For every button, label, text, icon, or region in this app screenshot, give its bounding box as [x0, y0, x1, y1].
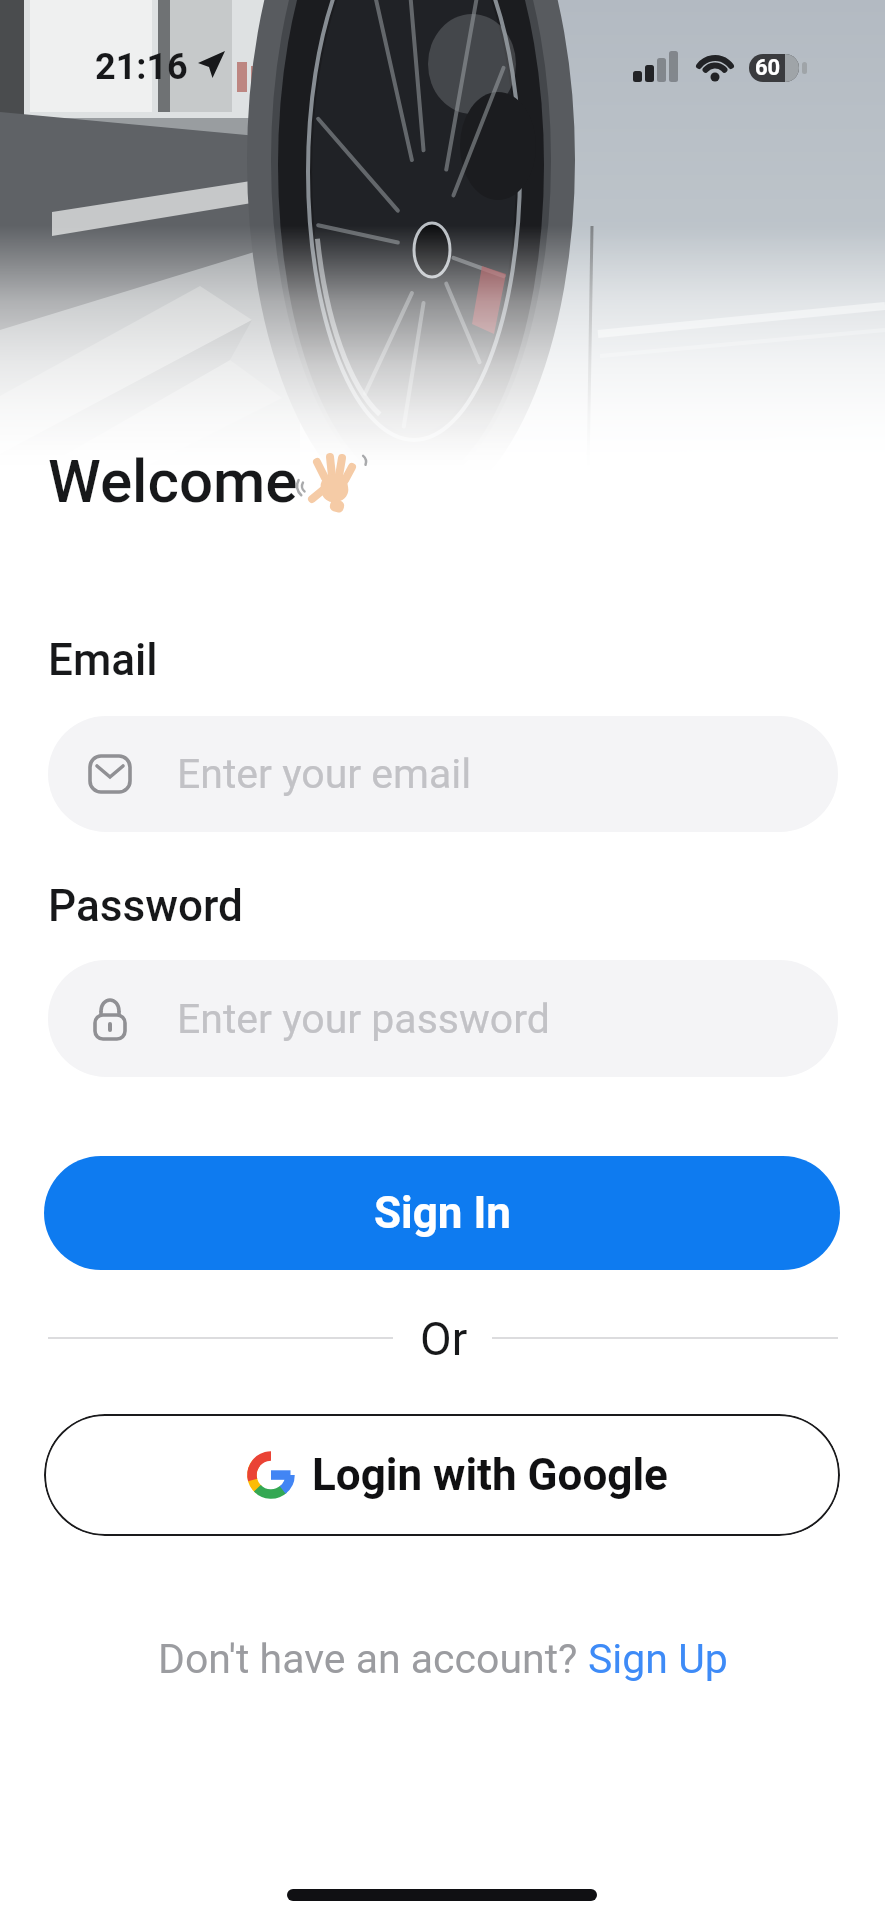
staticText: Login with Google: [312, 1449, 668, 1501]
staticText: Sign In: [374, 1187, 511, 1239]
button[interactable]: Sign Up: [588, 1635, 728, 1683]
button[interactable]: Enter your password: [48, 960, 838, 1077]
staticText: Password: [48, 880, 243, 932]
staticText: Enter your email: [177, 750, 472, 798]
button[interactable]: Sign In: [44, 1156, 840, 1270]
button[interactable]: Enter your email: [48, 716, 838, 832]
button[interactable]: Login with Google: [44, 1414, 840, 1536]
staticText: Email: [48, 634, 158, 686]
staticText: Welcome: [48, 446, 298, 516]
staticText: Don't have an account?: [158, 1635, 588, 1683]
staticText: 21:16: [95, 46, 188, 88]
staticText: Or: [420, 1312, 468, 1366]
staticText: 60: [755, 55, 781, 81]
staticText: Enter your password: [177, 995, 550, 1043]
